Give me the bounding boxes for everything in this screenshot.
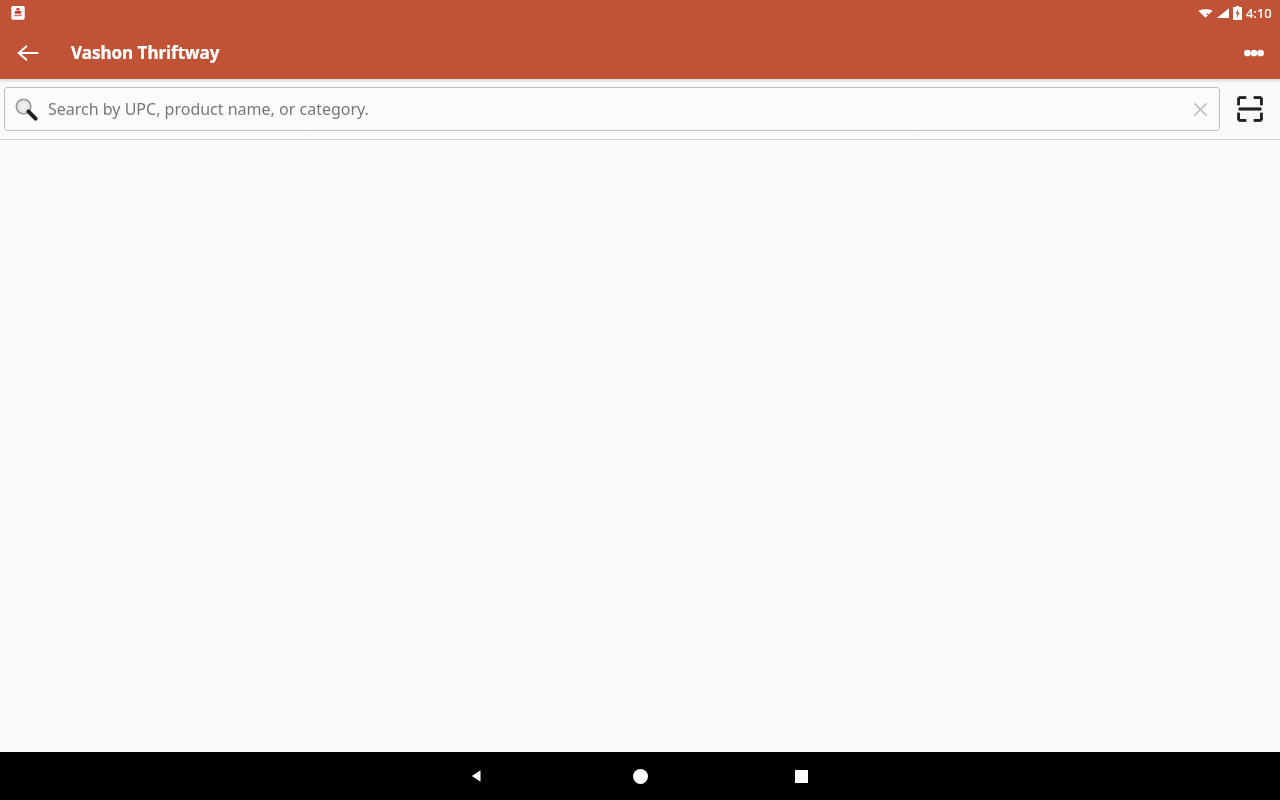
staticText: Vashon Thriftway <box>71 41 220 64</box>
button[interactable]: Search by UPC, product name, or category… <box>4 87 1220 131</box>
button[interactable]: More options <box>1230 29 1278 77</box>
button[interactable]: Scan barcode <box>1220 85 1280 133</box>
button[interactable]: Recent apps <box>777 752 825 800</box>
staticText: Search by UPC, product name, or category… <box>48 98 1180 120</box>
staticText: 4:10 <box>1246 4 1272 22</box>
button[interactable]: Back <box>453 752 501 800</box>
button[interactable]: Home <box>616 752 664 800</box>
button[interactable]: Clear search <box>1180 89 1220 129</box>
button[interactable]: Back <box>4 29 52 77</box>
